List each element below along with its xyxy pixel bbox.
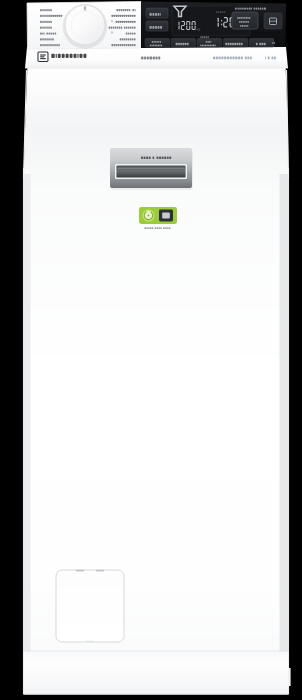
button[interactable]: Electrolux PerfectCare 600 top load wash… xyxy=(0,0,302,700)
